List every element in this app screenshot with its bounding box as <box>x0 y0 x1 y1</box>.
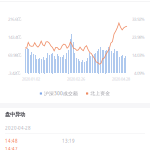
staticText: 沪深300成交额 <box>44 90 78 97</box>
staticText: 2020-04-28 <box>112 76 130 82</box>
staticText: 143.4亿 <box>8 34 21 40</box>
staticText: 33.92% <box>132 16 145 22</box>
staticText: -3.42亿 <box>8 70 20 76</box>
staticText: 216.6亿 <box>8 16 21 22</box>
staticText: 2020-04-28 <box>5 125 31 131</box>
staticText: 盘中异动 <box>5 111 25 118</box>
staticText: 北上资金 <box>90 90 110 96</box>
staticText: 2020-02-26 <box>67 76 85 82</box>
staticText: 14.03% <box>132 52 145 58</box>
staticText: 14:47 <box>5 146 18 150</box>
staticText: 13:19 <box>62 138 75 144</box>
staticText: 23.98% <box>132 34 145 40</box>
staticText: 4.09% <box>134 70 145 76</box>
staticText: 2020-01-02 <box>22 76 40 82</box>
staticText: 14:48 <box>5 138 18 144</box>
staticText: 69.98亿 <box>8 52 21 58</box>
